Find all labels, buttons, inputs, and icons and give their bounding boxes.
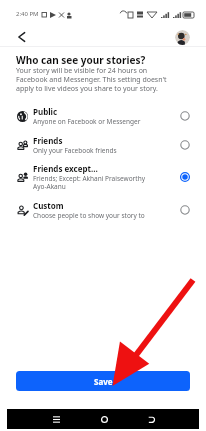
staticText: Save — [94, 376, 113, 387]
staticText: Your story will be visible for 24 hours … — [16, 66, 178, 93]
staticText: 2:40 PM — [16, 10, 39, 18]
staticText: Choose people to show your story to — [33, 211, 145, 220]
button[interactable]: Home — [96, 411, 112, 427]
button[interactable]: Custom — [0, 195, 206, 225]
button[interactable]: Public — [0, 101, 206, 130]
button[interactable]: Back — [13, 28, 30, 45]
button[interactable]: Back — [143, 411, 159, 427]
staticText: Anyone on Facebook or Messenger — [33, 117, 141, 126]
staticText: Who can see your stories? — [16, 53, 146, 67]
staticText: Friends; Except: Akhani Praiseworthy Ayo… — [33, 174, 145, 191]
button[interactable]: Profile — [175, 30, 190, 45]
staticText: Public — [33, 106, 58, 117]
staticText: Only your Facebook friends — [33, 146, 117, 155]
staticText: Custom — [33, 200, 64, 211]
button[interactable]: Friends — [0, 130, 206, 159]
staticText: Friends except… — [33, 163, 98, 174]
button[interactable]: Recent apps — [48, 411, 64, 427]
button[interactable]: Friends except… — [0, 159, 206, 195]
staticText: Friends — [33, 135, 63, 146]
button[interactable]: Save — [16, 371, 190, 391]
